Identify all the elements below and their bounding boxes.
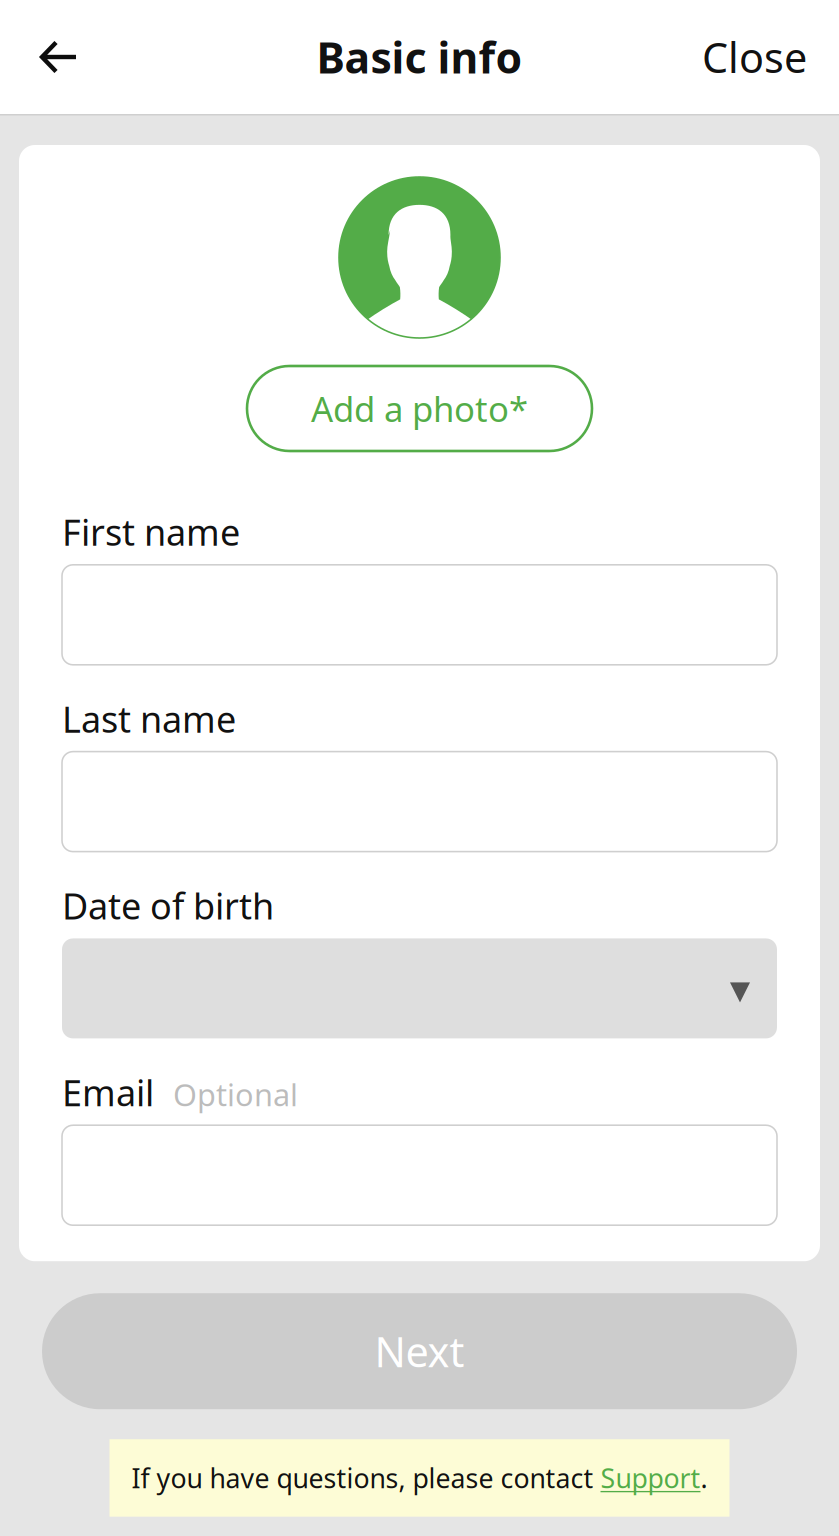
button[interactable]: Add a photo* bbox=[247, 366, 592, 451]
button[interactable]: Date of birth bbox=[62, 938, 777, 1038]
staticText: Email bbox=[62, 1068, 154, 1116]
button[interactable]: Support bbox=[600, 1460, 700, 1496]
staticText: Add a photo* bbox=[311, 385, 528, 431]
button[interactable]: Back bbox=[0, 0, 115, 114]
staticText: Support bbox=[600, 1460, 700, 1496]
staticText: Close bbox=[702, 30, 807, 84]
staticText: Optional bbox=[173, 1074, 298, 1115]
staticText: If you have questions, please contact bbox=[131, 1460, 600, 1496]
staticText: . bbox=[700, 1460, 707, 1496]
staticText: First name bbox=[62, 508, 240, 556]
staticText: Date of birth bbox=[62, 882, 274, 929]
button[interactable]: Next bbox=[42, 1293, 797, 1409]
staticText: Basic info bbox=[316, 29, 522, 85]
button[interactable]: Close bbox=[637, 0, 839, 114]
staticText: Next bbox=[374, 1324, 464, 1379]
staticText: Last name bbox=[62, 695, 236, 743]
